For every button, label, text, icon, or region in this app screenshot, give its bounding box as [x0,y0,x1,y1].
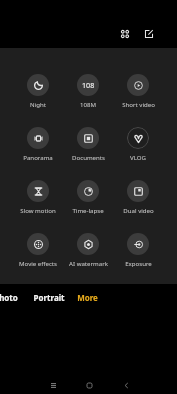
button[interactable]: Back [115,374,137,394]
button[interactable]: 108 [63,74,113,108]
button[interactable]: Exposure [113,233,163,267]
button[interactable]: Photo [0,288,28,306]
staticText: Movie effects [19,259,57,267]
button[interactable]: Edit modes [138,23,160,45]
staticText: Exposure [125,259,152,267]
button[interactable]: Night [13,74,63,108]
staticText: Night [30,100,46,108]
staticText: Documents [72,153,105,161]
staticText: Photo [0,292,18,303]
staticText: Short video [122,100,155,108]
staticText: 108 [82,80,95,90]
staticText: Panorama [23,153,53,161]
button[interactable]: Time-lapse [63,180,113,214]
button[interactable]: Panorama [13,127,63,161]
button[interactable]: Short video [113,74,163,108]
staticText: More [77,292,98,303]
button[interactable]: Portrait [27,288,71,306]
button[interactable]: Dual video [113,180,163,214]
button[interactable]: Home [78,374,100,394]
button[interactable]: Slow motion [13,180,63,214]
button[interactable]: VLOG [113,127,163,161]
button[interactable]: More [65,288,109,306]
staticText: AI watermark [69,259,108,267]
staticText: Portrait [33,292,65,303]
staticText: Time-lapse [72,206,104,214]
staticText: Dual video [123,206,154,214]
staticText: 108M [80,100,96,108]
staticText: Slow motion [20,206,56,214]
button[interactable]: Movie effects [13,233,63,267]
button[interactable]: Camera modes grid [114,23,136,45]
button[interactable]: Documents [63,127,113,161]
button[interactable]: AI watermark [63,233,113,267]
staticText: VLOG [130,153,146,161]
button[interactable]: Recent apps [42,374,64,394]
